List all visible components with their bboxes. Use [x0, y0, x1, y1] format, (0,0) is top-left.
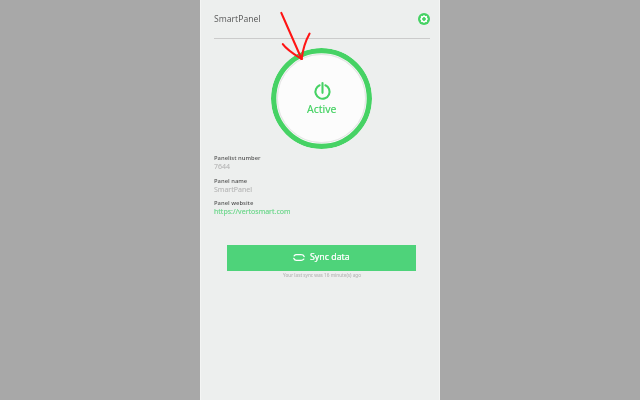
button[interactable]: Panel status: Active: [271, 48, 372, 149]
staticText: SmartPanel: [214, 13, 261, 25]
button[interactable]: Settings: [418, 13, 430, 25]
staticText: Panel website: [214, 199, 254, 207]
button[interactable]: https://vertosmart.com: [214, 207, 291, 217]
staticText: Active: [307, 102, 337, 116]
staticText: Your last sync was 16 minute(s) ago: [283, 272, 362, 278]
button[interactable]: Sync data: [227, 245, 416, 271]
staticText: Panelist number: [214, 154, 261, 162]
staticText: Panel name: [214, 177, 248, 185]
staticText: Sync data: [310, 251, 350, 263]
staticText: SmartPanel: [214, 185, 252, 195]
staticText: 7644: [214, 162, 231, 172]
staticText: https://vertosmart.com: [214, 207, 291, 217]
